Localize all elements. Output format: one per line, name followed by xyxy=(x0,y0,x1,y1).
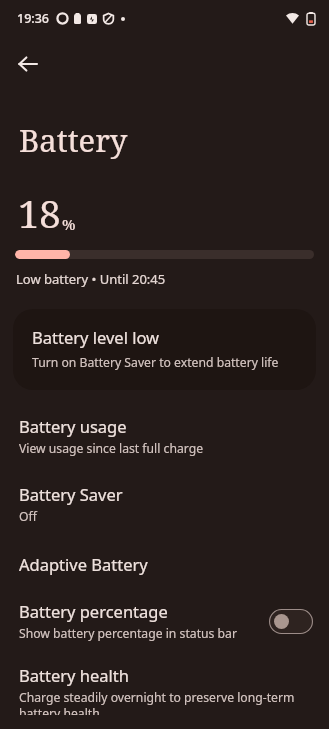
staticText: Turn on Battery Saver to extend battery … xyxy=(32,354,279,371)
staticText: Low battery • Until 20:45 xyxy=(16,270,166,288)
staticText: Battery usage xyxy=(19,415,127,437)
other: Battery percentage toggle, off xyxy=(269,609,313,634)
button[interactable]: Adaptive Battery xyxy=(0,539,329,591)
staticText: % xyxy=(62,214,76,234)
button[interactable]: Battery health xyxy=(0,654,329,729)
button[interactable]: Battery Saver xyxy=(0,471,329,539)
staticText: Battery level low xyxy=(32,326,160,348)
staticText: 19:36 xyxy=(17,10,50,27)
staticText: 18 xyxy=(18,187,61,239)
staticText: Charge steadily overnight to preserve lo… xyxy=(19,689,313,715)
staticText: Battery percentage xyxy=(19,600,168,622)
button[interactable]: Back xyxy=(6,42,50,86)
staticText: Battery xyxy=(19,119,128,161)
staticText: Battery health xyxy=(19,664,129,686)
staticText: Show battery percentage in status bar xyxy=(19,625,237,642)
button[interactable]: Battery usage xyxy=(0,405,329,471)
staticText: Battery Saver xyxy=(19,483,123,505)
staticText: Off xyxy=(19,508,37,525)
button[interactable]: Battery percentage xyxy=(0,591,329,654)
staticText: Adaptive Battery xyxy=(19,553,148,575)
staticText: View usage since last full charge xyxy=(19,440,204,457)
button[interactable]: Battery level low xyxy=(13,309,316,390)
